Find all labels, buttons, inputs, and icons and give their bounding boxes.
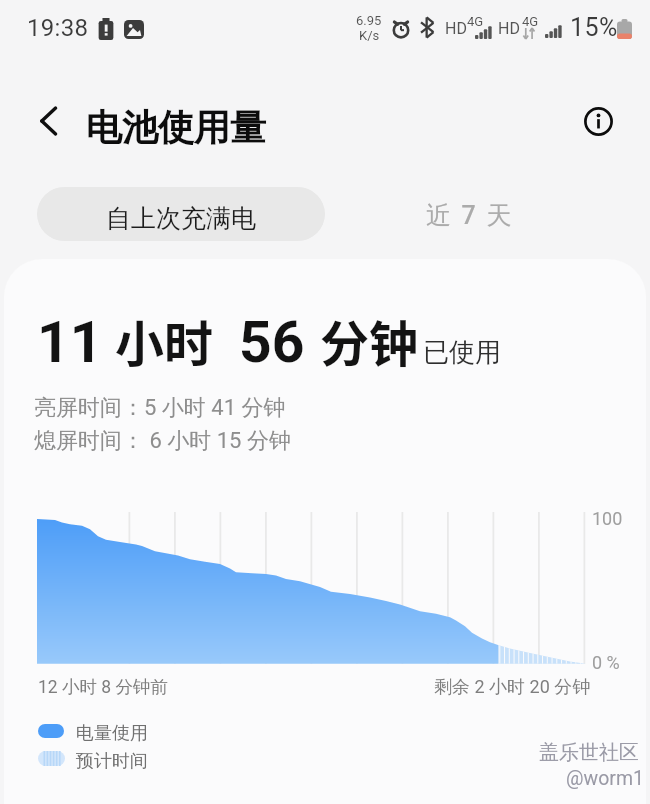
staticText: 12 小时 8 分钟前 xyxy=(38,676,169,698)
staticText: 56 xyxy=(239,309,305,376)
button[interactable]: Information xyxy=(577,100,620,143)
staticText: 19:38 xyxy=(27,14,89,42)
staticText: 盖乐世社区 xyxy=(539,740,639,765)
staticText: 4G xyxy=(522,14,539,29)
staticText: HD xyxy=(445,19,467,38)
staticText: 小时 xyxy=(115,305,214,376)
staticText: @worm1 xyxy=(566,767,644,790)
staticText: 电量使用 xyxy=(76,722,148,745)
staticText: 亮屏时间：5 小时 41 分钟 xyxy=(34,394,286,422)
staticText: 11 xyxy=(37,309,103,376)
staticText: 近 7 天 xyxy=(426,200,514,231)
button[interactable]: Back xyxy=(27,99,71,143)
button[interactable]: 自上次充满电 xyxy=(37,187,325,241)
staticText: 6.95 xyxy=(356,13,382,28)
staticText: 100 xyxy=(592,508,623,529)
staticText: 已使用 xyxy=(423,336,501,369)
staticText: 分钟 xyxy=(320,305,419,376)
staticText: 4G xyxy=(467,14,484,29)
staticText: HD xyxy=(498,19,520,38)
staticText: 自上次充满电 xyxy=(106,203,256,234)
staticText: 预计时间 xyxy=(76,750,148,773)
staticText: 0 % xyxy=(592,652,620,673)
staticText: 15% xyxy=(570,13,618,42)
staticText: 熄屏时间： 6 小时 15 分钟 xyxy=(34,427,291,455)
staticText: 电池使用量 xyxy=(86,105,266,150)
button[interactable]: 近 7 天 xyxy=(368,187,568,241)
staticText: 剩余 2 小时 20 分钟 xyxy=(434,676,591,699)
staticText: K/s xyxy=(359,28,380,43)
